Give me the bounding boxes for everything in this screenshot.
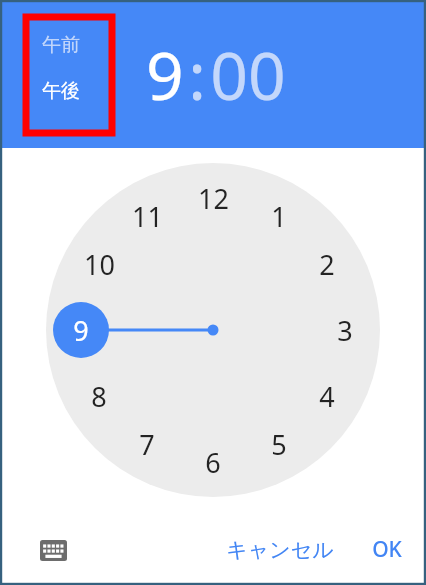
staticText: 6 xyxy=(205,444,221,481)
staticText: 3 xyxy=(337,312,353,349)
staticText: 12 xyxy=(198,180,229,217)
staticText: 2 xyxy=(319,246,335,283)
staticText: 5 xyxy=(271,426,287,463)
staticText: キャンセル xyxy=(226,537,334,563)
button[interactable]: 12 xyxy=(188,177,238,219)
staticText: 11 xyxy=(132,198,163,235)
staticText: 9 xyxy=(146,29,184,119)
button[interactable]: 10 xyxy=(74,243,124,285)
button[interactable]: 9 xyxy=(56,309,106,351)
staticText: 8 xyxy=(91,378,107,415)
staticText: 午前 xyxy=(42,33,80,57)
staticText: 1 xyxy=(271,198,287,235)
button[interactable]: 8 xyxy=(74,375,124,417)
staticText: 午後 xyxy=(42,79,80,103)
button[interactable]: 3 xyxy=(320,309,370,351)
staticText: 7 xyxy=(139,426,155,463)
button[interactable] xyxy=(0,148,426,514)
button[interactable]: 00 xyxy=(210,29,286,119)
button[interactable]: 2 xyxy=(302,243,352,285)
staticText: : xyxy=(188,29,206,119)
button[interactable]: 6 xyxy=(188,441,238,483)
button[interactable]: 午後 xyxy=(30,68,92,114)
staticText: 00 xyxy=(210,29,286,119)
button[interactable]: キャンセル xyxy=(216,529,344,571)
button[interactable]: 5 xyxy=(254,423,304,465)
staticText: 10 xyxy=(84,246,115,283)
button[interactable]: 午前 xyxy=(30,22,92,114)
button[interactable]: 1 xyxy=(254,195,304,237)
button[interactable]: 7 xyxy=(122,423,172,465)
button[interactable]: 午前 xyxy=(30,22,92,68)
button[interactable]: Switch to text input xyxy=(32,529,74,571)
button[interactable]: 4 xyxy=(302,375,352,417)
staticText: 9 xyxy=(73,312,89,349)
button[interactable]: OK xyxy=(362,527,412,572)
staticText: 4 xyxy=(319,378,335,415)
button[interactable]: 11 xyxy=(122,195,172,237)
button[interactable]: 9 xyxy=(146,29,184,119)
staticText: OK xyxy=(372,535,402,564)
